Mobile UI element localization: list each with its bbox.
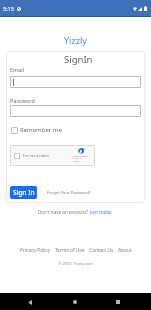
staticText: 5:15	[3, 5, 14, 12]
staticText: © 2021 Yizzly.com	[58, 261, 94, 267]
staticText: I'm not a robot	[23, 153, 49, 158]
staticText: Yizzly	[64, 34, 87, 46]
button[interactable]: Join today.	[90, 209, 113, 215]
staticText: Don't have an account?	[38, 209, 90, 215]
staticText: Email	[10, 66, 25, 73]
button[interactable]: Recent apps	[110, 294, 126, 310]
button[interactable]: Terms of Use	[55, 247, 85, 254]
staticText: SignIn	[64, 53, 93, 66]
staticText: Remember me	[20, 126, 62, 134]
button[interactable]: Back	[22, 294, 38, 310]
staticText: reCAPTCHA	[74, 154, 88, 157]
button[interactable]: Privacy Policy	[20, 247, 51, 254]
button[interactable]: Forgot Your Password?	[47, 190, 91, 196]
button[interactable]	[10, 76, 141, 88]
button[interactable]: Sign In	[10, 186, 37, 199]
button[interactable]: Contact Us	[89, 247, 114, 254]
button[interactable]: Remember me	[11, 126, 62, 134]
staticText: Privacy - Terms	[74, 157, 88, 163]
staticText: Password	[10, 97, 35, 104]
button[interactable]: About	[118, 247, 132, 254]
button[interactable]	[10, 105, 141, 117]
staticText: Sign In	[13, 188, 35, 197]
button[interactable]: Home	[67, 294, 83, 310]
button[interactable]: I'm not a robot reCAPTCHA	[10, 145, 95, 166]
